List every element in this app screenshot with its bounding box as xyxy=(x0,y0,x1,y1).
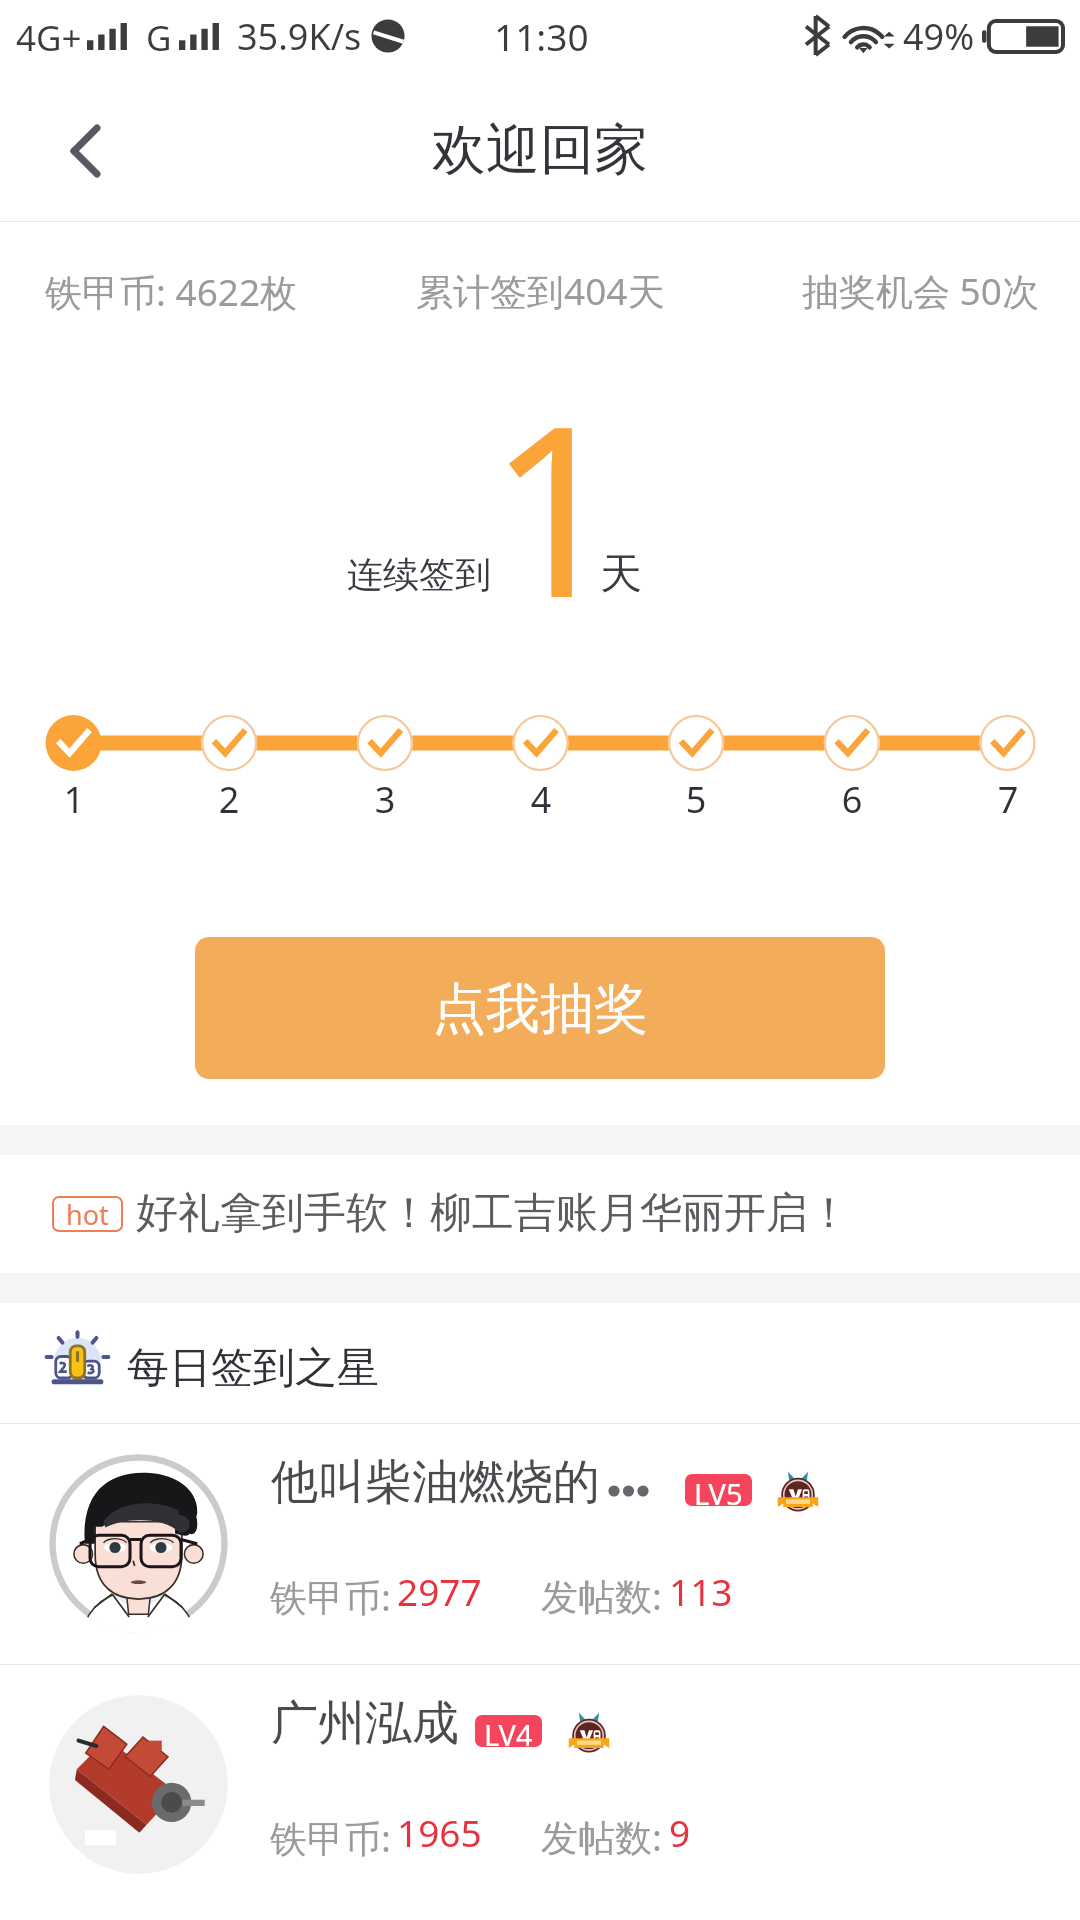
staticText: 欢迎回家 xyxy=(432,116,648,184)
staticText: 2 xyxy=(199,775,259,824)
staticText: LV4 xyxy=(484,1715,533,1747)
staticText: 好礼拿到手软！柳工吉账月华丽开启！ xyxy=(136,1187,850,1240)
button[interactable]: 每日签到之星 xyxy=(0,1303,1080,1423)
button[interactable]: hot xyxy=(0,1155,1080,1273)
staticText: 点我抽奖 xyxy=(432,975,648,1043)
staticText: LV5 xyxy=(694,1474,743,1506)
staticText: 抽奖机会 50次 xyxy=(802,265,1039,316)
staticText: 6 xyxy=(822,775,882,824)
staticText: 113 xyxy=(669,1566,733,1616)
button[interactable]: Back xyxy=(0,80,170,221)
staticText: 广州泓成 xyxy=(271,1694,459,1753)
staticText: 铁甲币: xyxy=(270,1571,401,1622)
staticText: 7 xyxy=(978,775,1038,824)
staticText: hot xyxy=(66,1196,109,1232)
button[interactable]: 广州泓成 xyxy=(0,1665,1080,1905)
staticText: 铁甲币: xyxy=(270,1812,401,1863)
staticText: 发帖数: xyxy=(541,1570,672,1621)
staticText: 11:30 xyxy=(494,11,589,61)
staticText: 每日签到之星 xyxy=(127,1342,379,1395)
staticText: 9 xyxy=(669,1807,691,1857)
staticText: 连续签到 xyxy=(347,552,491,597)
staticText: 1 xyxy=(488,345,623,666)
staticText: 累计签到404天 xyxy=(416,265,665,316)
staticText: 4G+ xyxy=(16,14,82,62)
staticText: 5 xyxy=(666,775,726,824)
staticText: 1 xyxy=(44,775,104,824)
button[interactable]: 点我抽奖 xyxy=(195,937,885,1079)
staticText: 49% xyxy=(903,12,975,61)
staticText: 发帖数: xyxy=(541,1811,672,1862)
staticText: 35.9K/s xyxy=(237,12,362,61)
staticText: 天 xyxy=(600,548,642,601)
button[interactable]: 他叫柴油燃烧的 xyxy=(0,1424,1080,1664)
staticText: G xyxy=(146,14,172,62)
staticText: 他叫柴油燃烧的 xyxy=(271,1453,600,1512)
staticText: 4 xyxy=(511,775,571,824)
staticText: 3 xyxy=(355,775,415,824)
staticText: 铁甲币: 4622枚 xyxy=(45,266,298,317)
staticText: 2977 xyxy=(397,1566,482,1616)
staticText: 1965 xyxy=(397,1807,482,1857)
